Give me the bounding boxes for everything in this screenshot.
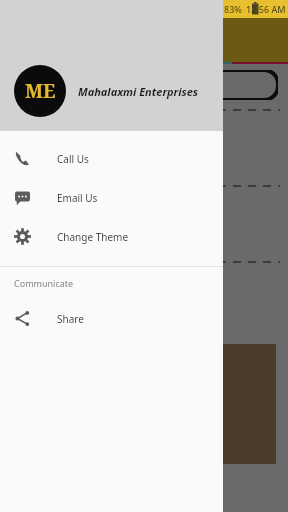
staticText: Communicate [14, 277, 74, 289]
staticText: Mahalaxmi Enterprises [78, 84, 199, 99]
button[interactable]: Accessories [0, 187, 288, 262]
button[interactable]: Email Us [0, 178, 223, 217]
staticText: Email Us [57, 191, 98, 205]
staticText: Change Theme [57, 230, 129, 244]
button[interactable]: Share [0, 299, 223, 338]
staticText: Accessories [125, 240, 164, 250]
button[interactable]: Call Us [0, 139, 223, 178]
button[interactable]: Accessories [0, 111, 288, 186]
staticText: Call Us [57, 152, 89, 166]
button[interactable] [10, 70, 278, 100]
staticText: 83% [224, 3, 242, 15]
staticText: Share [57, 312, 84, 326]
button[interactable]: Accessories [0, 263, 288, 338]
staticText: 12:56 AM [246, 3, 286, 15]
button[interactable]: Change Theme [0, 217, 223, 256]
button[interactable] [12, 344, 276, 464]
staticText: ME [25, 78, 56, 104]
